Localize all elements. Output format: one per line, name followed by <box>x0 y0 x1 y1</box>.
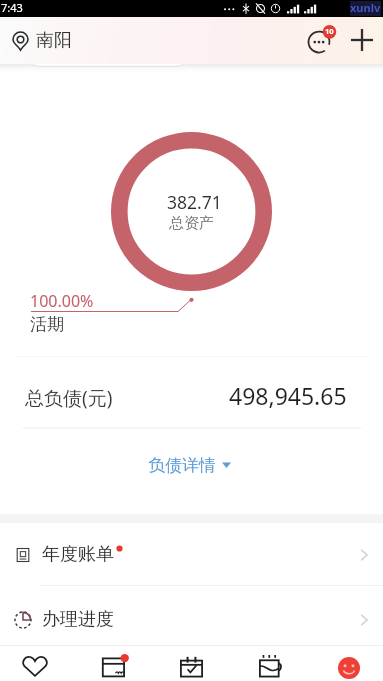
button[interactable]: 办理进度 <box>0 586 383 654</box>
staticText: 498,945.65 <box>229 380 347 411</box>
staticText: xunlv <box>350 0 381 15</box>
staticText: 活期 <box>30 314 64 335</box>
button[interactable]: 年度账单 <box>0 525 383 585</box>
button[interactable]: 南阳 <box>0 21 80 61</box>
staticText: 382.71 <box>167 190 222 214</box>
staticText: 7:43 <box>1 0 23 15</box>
staticText: 年度账单 <box>42 543 114 566</box>
staticText: 100.00% <box>30 290 94 312</box>
button[interactable]: Wallet <box>254 649 288 681</box>
staticText: 总负债(元) <box>25 385 113 411</box>
staticText: 10 <box>325 26 334 36</box>
button[interactable]: Search <box>24 52 191 67</box>
staticText: 总资产 <box>169 214 214 233</box>
button[interactable]: Cards <box>97 651 131 681</box>
staticText: 负债详情 <box>148 455 216 476</box>
button[interactable]: Messages <box>304 23 338 57</box>
button[interactable]: Calendar <box>175 650 208 681</box>
button[interactable]: Add <box>346 24 378 56</box>
button[interactable]: Favorites <box>18 650 52 681</box>
staticText: 南阳 <box>36 29 72 52</box>
staticText: 办理进度 <box>42 608 114 631</box>
button[interactable]: Assistant <box>338 657 360 679</box>
button[interactable]: 负债详情 <box>140 450 239 480</box>
